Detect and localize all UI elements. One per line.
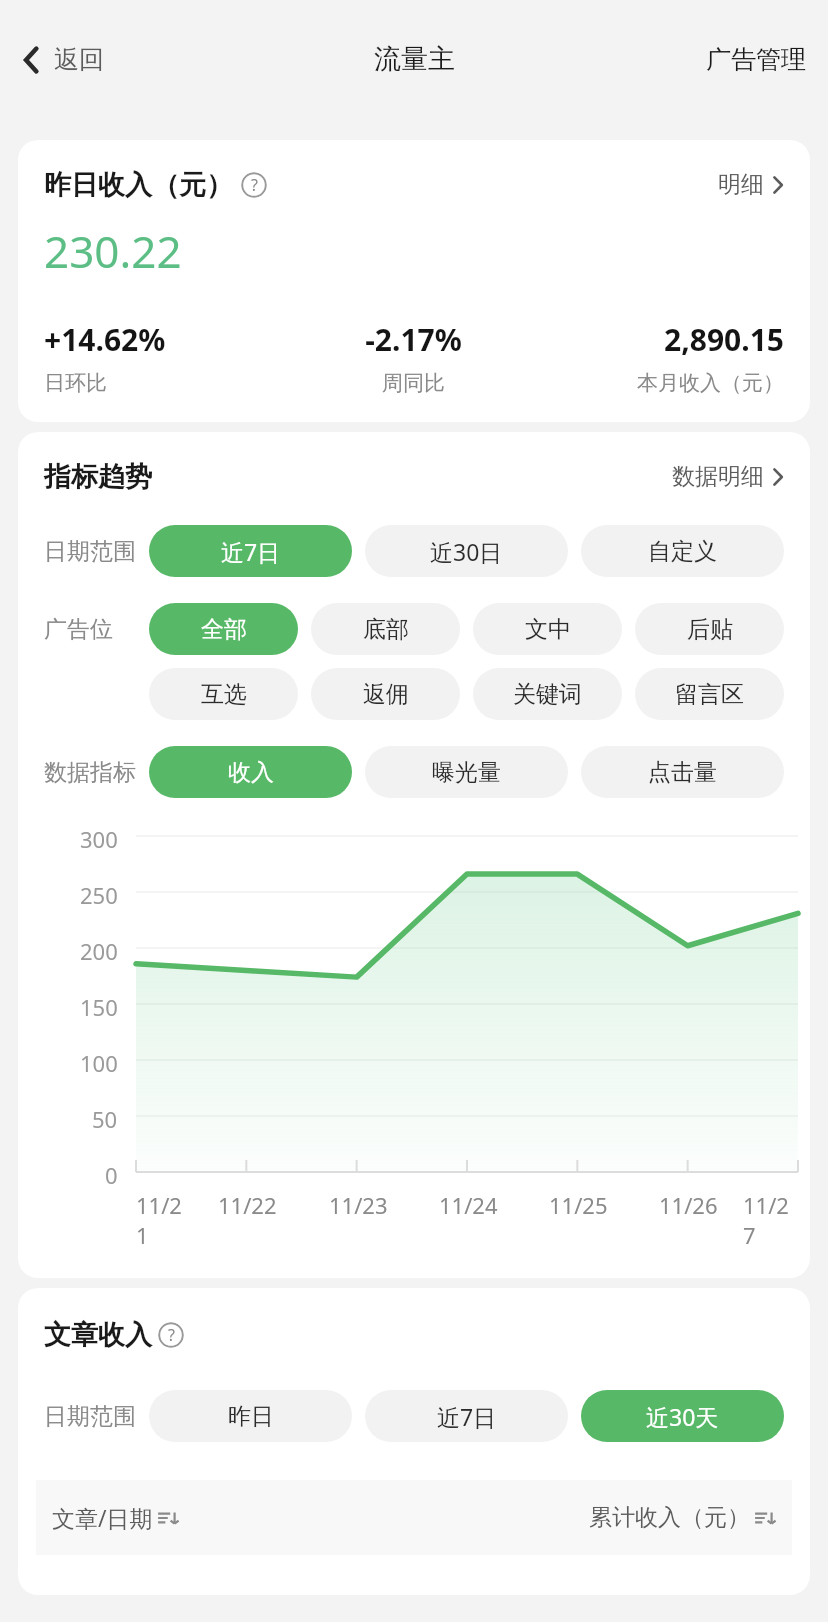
button[interactable]: 关键词 (473, 668, 622, 720)
button[interactable]: 全部 (149, 603, 298, 655)
staticText: 11/25 (549, 1190, 608, 1220)
button[interactable]: 累计收入（元） (589, 1503, 776, 1532)
staticText: 50 (92, 1104, 118, 1128)
staticText: 昨日收入（元） (44, 168, 233, 202)
button[interactable]: 明细 (714, 166, 788, 203)
staticText: 曝光量 (432, 758, 501, 787)
button[interactable]: 底部 (311, 603, 460, 655)
button[interactable]: 说明 (158, 1322, 184, 1348)
staticText: +14.62% (44, 319, 290, 360)
button[interactable]: 后贴 (635, 603, 784, 655)
staticText: -2.17% (290, 319, 537, 360)
staticText: 数据明细 (672, 462, 764, 491)
button[interactable]: 说明 (241, 172, 267, 198)
staticText: 日期范围 (44, 537, 149, 566)
staticText: 300 (80, 824, 118, 848)
staticText: ? (251, 174, 258, 196)
staticText: 文章/日期 (52, 1502, 153, 1533)
staticText: 广告位 (44, 615, 149, 644)
staticText: 留言区 (675, 680, 744, 709)
button[interactable]: 返佣 (311, 668, 460, 720)
staticText: 11/23 (329, 1190, 388, 1220)
staticText: 100 (80, 1048, 118, 1072)
staticText: 11/27 (743, 1190, 798, 1250)
staticText: 累计收入（元） (589, 1503, 750, 1532)
button[interactable]: 留言区 (635, 668, 784, 720)
staticText: 自定义 (648, 537, 717, 566)
staticText: 0 (105, 1160, 118, 1184)
staticText: 收入 (228, 758, 274, 787)
staticText: 150 (80, 992, 118, 1016)
staticText: 底部 (363, 615, 409, 644)
button[interactable]: 文中 (473, 603, 622, 655)
button[interactable]: 数据明细 (668, 458, 788, 495)
button[interactable]: 返回 (12, 36, 114, 83)
staticText: 昨日 (228, 1402, 274, 1431)
button[interactable]: 互选 (149, 668, 298, 720)
staticText: ? (168, 1324, 175, 1346)
button[interactable]: 近30天 (581, 1390, 784, 1442)
staticText: 指标趋势 (44, 460, 152, 494)
button[interactable]: 文章/日期 (52, 1502, 179, 1533)
staticText: 230.22 (44, 221, 182, 281)
staticText: 数据指标 (44, 758, 149, 787)
staticText: 文中 (525, 615, 571, 644)
staticText: 关键词 (513, 680, 582, 709)
button[interactable]: 昨日 (149, 1390, 352, 1442)
staticText: 返佣 (363, 680, 409, 709)
staticText: 明细 (718, 170, 764, 199)
staticText: 11/22 (218, 1190, 277, 1220)
staticText: 本月收入（元） (537, 370, 784, 396)
staticText: 近30天 (646, 1401, 719, 1432)
button[interactable]: 近7日 (365, 1390, 568, 1442)
staticText: 2,890.15 (537, 319, 784, 360)
staticText: 11/21 (136, 1190, 192, 1250)
staticText: 日环比 (44, 370, 290, 396)
staticText: 互选 (201, 680, 247, 709)
staticText: 11/24 (439, 1190, 498, 1220)
staticText: 11/26 (659, 1190, 718, 1220)
staticText: 流量主 (374, 42, 455, 76)
staticText: 近7日 (437, 1401, 497, 1432)
staticText: 近7日 (221, 536, 281, 567)
button[interactable]: 近7日 (149, 525, 352, 577)
staticText: 250 (80, 880, 118, 904)
staticText: 日期范围 (44, 1402, 149, 1431)
button[interactable]: 收入 (149, 746, 352, 798)
staticText: 周同比 (290, 370, 537, 396)
staticText: 广告管理 (706, 44, 806, 75)
staticText: 近30日 (430, 536, 503, 567)
staticText: 200 (80, 936, 118, 960)
button[interactable]: 点击量 (581, 746, 784, 798)
staticText: 全部 (201, 615, 247, 644)
button[interactable]: 曝光量 (365, 746, 568, 798)
button[interactable]: 自定义 (581, 525, 784, 577)
button[interactable]: 近30日 (365, 525, 568, 577)
staticText: 返回 (54, 44, 104, 75)
staticText: 点击量 (648, 758, 717, 787)
button[interactable]: 广告管理 (696, 36, 816, 83)
staticText: 文章收入 (44, 1318, 152, 1352)
staticText: 后贴 (687, 615, 733, 644)
